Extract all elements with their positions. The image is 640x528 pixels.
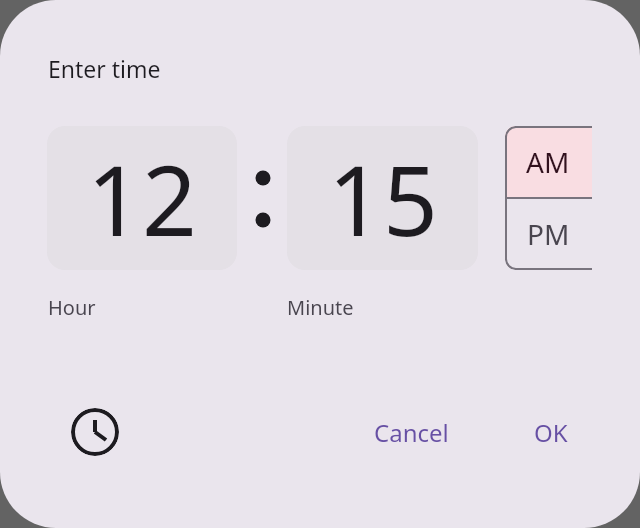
staticText: PM [527,215,570,253]
staticText: 15 [328,133,438,264]
button[interactable]: 12 [47,126,237,270]
button[interactable]: AM [505,126,615,198]
button[interactable]: 15 [287,126,478,270]
staticText: AM [526,143,570,181]
staticText: OK [534,416,568,449]
staticText: 12 [87,133,197,264]
staticText: Cancel [374,416,449,449]
button[interactable]: OK [521,408,581,456]
button[interactable]: Cancel [356,408,467,456]
staticText: Minute [287,294,354,321]
staticText: Enter time [48,53,161,84]
staticText: Hour [48,294,96,321]
button[interactable]: Switch to clock mode [71,408,119,456]
button[interactable]: PM [505,198,615,270]
